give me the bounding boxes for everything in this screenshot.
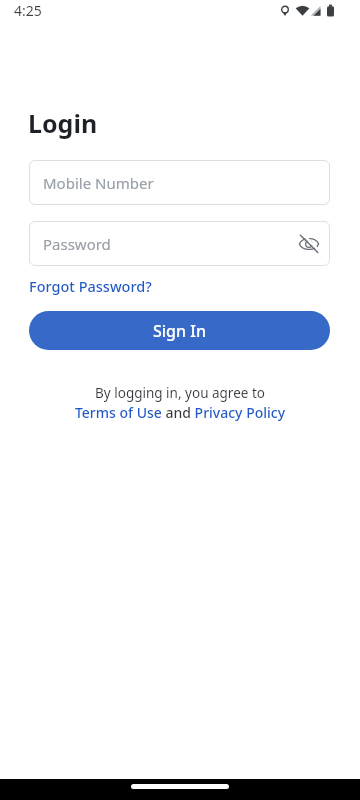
staticText: Sign In [153,320,206,342]
staticText: Password [43,234,111,254]
staticText: Mobile Number [43,173,154,193]
staticText: By logging in, you agree to [0,384,360,402]
staticText: 4:25 [14,1,42,20]
staticText: Forgot Password? [29,276,152,296]
staticText: Terms of Use and Privacy Policy [0,403,360,422]
staticText: Login [28,106,98,140]
